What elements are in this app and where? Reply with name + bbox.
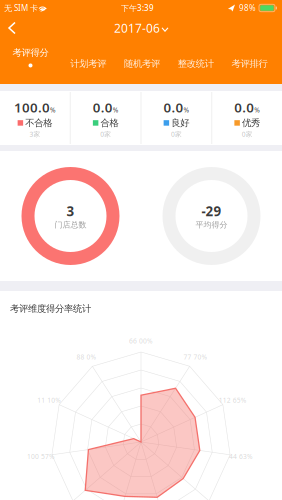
- staticText: 0.0: [93, 98, 113, 116]
- button[interactable]: 计划考评: [70, 40, 107, 84]
- staticText: 2017-06: [114, 20, 160, 36]
- staticText: 0.0: [163, 98, 183, 116]
- staticText: %: [113, 105, 119, 114]
- staticText: 无 SIM 卡: [4, 3, 38, 13]
- button[interactable]: 返回: [0, 16, 28, 39]
- staticText: 112 65%: [219, 396, 247, 404]
- button[interactable]: 随机考评: [123, 40, 160, 84]
- staticText: -29: [201, 202, 221, 220]
- staticText: 3家: [29, 130, 40, 139]
- staticText: %: [254, 105, 260, 114]
- staticText: 77 70%: [184, 353, 208, 361]
- staticText: 考评排行: [231, 58, 267, 69]
- staticText: 下午3:39: [121, 3, 154, 13]
- staticText: 优秀: [242, 117, 260, 129]
- staticText: 0.0: [234, 98, 254, 116]
- staticText: 考评维度得分率统计: [10, 303, 91, 314]
- staticText: 11 10%: [37, 396, 61, 404]
- staticText: 3: [66, 202, 74, 220]
- staticText: 0家: [171, 130, 182, 139]
- staticText: 合格: [100, 117, 118, 129]
- staticText: 随机考评: [124, 58, 160, 69]
- button[interactable]: 考评得分: [8, 40, 53, 84]
- staticText: %: [50, 105, 56, 114]
- staticText: %: [183, 105, 189, 114]
- staticText: 整改统计: [178, 58, 214, 69]
- staticText: 66 00%: [129, 337, 153, 345]
- staticText: 良好: [171, 117, 189, 129]
- button[interactable]: 考评排行: [231, 40, 268, 84]
- staticText: 平均得分: [195, 220, 227, 230]
- staticText: 100 57%: [27, 452, 55, 461]
- staticText: 0家: [242, 130, 253, 139]
- button[interactable]: 整改统计: [177, 40, 214, 84]
- staticText: 0家: [100, 130, 111, 139]
- staticText: 考评得分: [12, 47, 48, 58]
- staticText: 门店总数: [54, 220, 86, 230]
- staticText: 100.0: [14, 98, 50, 116]
- staticText: 88 0%: [76, 353, 96, 361]
- staticText: 44 63%: [229, 452, 253, 461]
- button[interactable]: 2017-06: [108, 15, 174, 41]
- staticText: 98%: [235, 3, 256, 13]
- staticText: 不合格: [25, 117, 52, 129]
- staticText: 计划考评: [70, 58, 106, 69]
